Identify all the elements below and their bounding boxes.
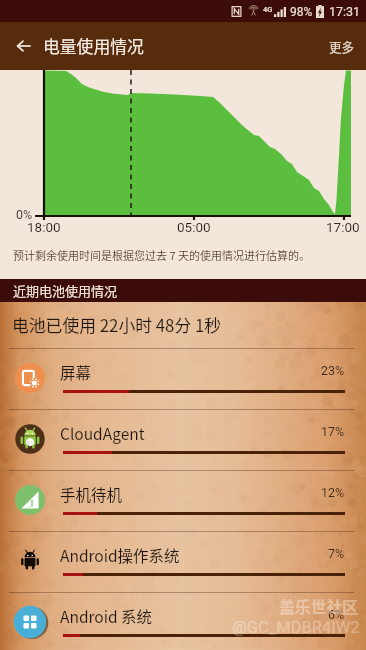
staticText: 0% (16, 207, 33, 222)
staticText: 12% (321, 485, 345, 500)
button[interactable]: 屏幕 (0, 348, 366, 409)
button[interactable]: 手机待机 (0, 470, 366, 531)
button[interactable]: Back (6, 28, 42, 64)
staticText: CloudAgent (60, 422, 145, 444)
staticText: 手机待机 (60, 483, 123, 505)
button[interactable]: Android操作系统 (0, 531, 366, 592)
staticText: 98% (290, 5, 313, 19)
button[interactable]: Android 系统 (0, 592, 366, 650)
button[interactable]: 更多 (315, 23, 366, 69)
staticText: Android操作系统 (60, 544, 180, 566)
staticText: Android 系统 (60, 605, 153, 627)
staticText: 6% (328, 607, 345, 622)
staticText: 电量使用情况 (43, 34, 144, 58)
staticText: 17:31 (329, 4, 361, 19)
staticText: 18:00 (27, 219, 61, 235)
staticText: @GC_MDBR4IW2 (232, 618, 360, 637)
staticText: 屏幕 (60, 361, 92, 383)
staticText: 17:00 (326, 219, 360, 235)
staticText: 23% (321, 363, 345, 378)
staticText: 更多 (329, 37, 355, 55)
staticText: 预计剩余使用时间是根据您过去 7 天的使用情况进行估算的。 (13, 247, 311, 263)
button[interactable]: CloudAgent (0, 409, 366, 470)
staticText: 盖乐世社区 (279, 595, 358, 618)
staticText: 17% (321, 424, 345, 439)
staticText: 05:00 (177, 219, 211, 235)
staticText: 电池已使用 22小时 48分 1秒 (12, 313, 222, 337)
staticText: 近期电池使用情况 (13, 281, 118, 300)
staticText: 7% (328, 546, 345, 561)
staticText: 4G (263, 5, 273, 14)
